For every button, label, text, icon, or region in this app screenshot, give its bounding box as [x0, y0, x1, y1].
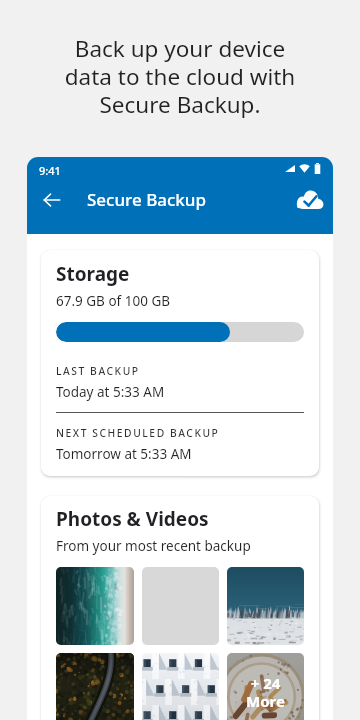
staticText: Photos & Videos — [56, 506, 209, 532]
button[interactable]: Photo — [56, 567, 134, 645]
staticText: Storage — [56, 261, 130, 287]
staticText: + 24 More — [246, 673, 285, 712]
staticText: NEXT SCHEDULED BACKUP — [56, 426, 220, 440]
staticText: From your most recent backup — [56, 537, 251, 555]
staticText: Today at 5:33 AM — [56, 383, 165, 401]
button[interactable]: Back — [34, 182, 70, 218]
staticText: Tomorrow at 5:33 AM — [56, 445, 192, 463]
button[interactable]: + 24 More — [227, 653, 304, 720]
staticText: LAST BACKUP — [56, 364, 140, 378]
button[interactable]: Photo — [227, 653, 304, 720]
staticText: 9:41 — [39, 163, 61, 178]
button[interactable]: Photo — [227, 567, 304, 645]
button[interactable]: Backup complete — [292, 182, 328, 218]
staticText: 67.9 GB of 100 GB — [56, 292, 171, 310]
button[interactable]: Photo — [56, 653, 134, 720]
staticText: Back up your device data to the cloud wi… — [0, 33, 360, 120]
staticText: Secure Backup — [87, 188, 207, 211]
button[interactable]: Photo — [142, 653, 219, 720]
